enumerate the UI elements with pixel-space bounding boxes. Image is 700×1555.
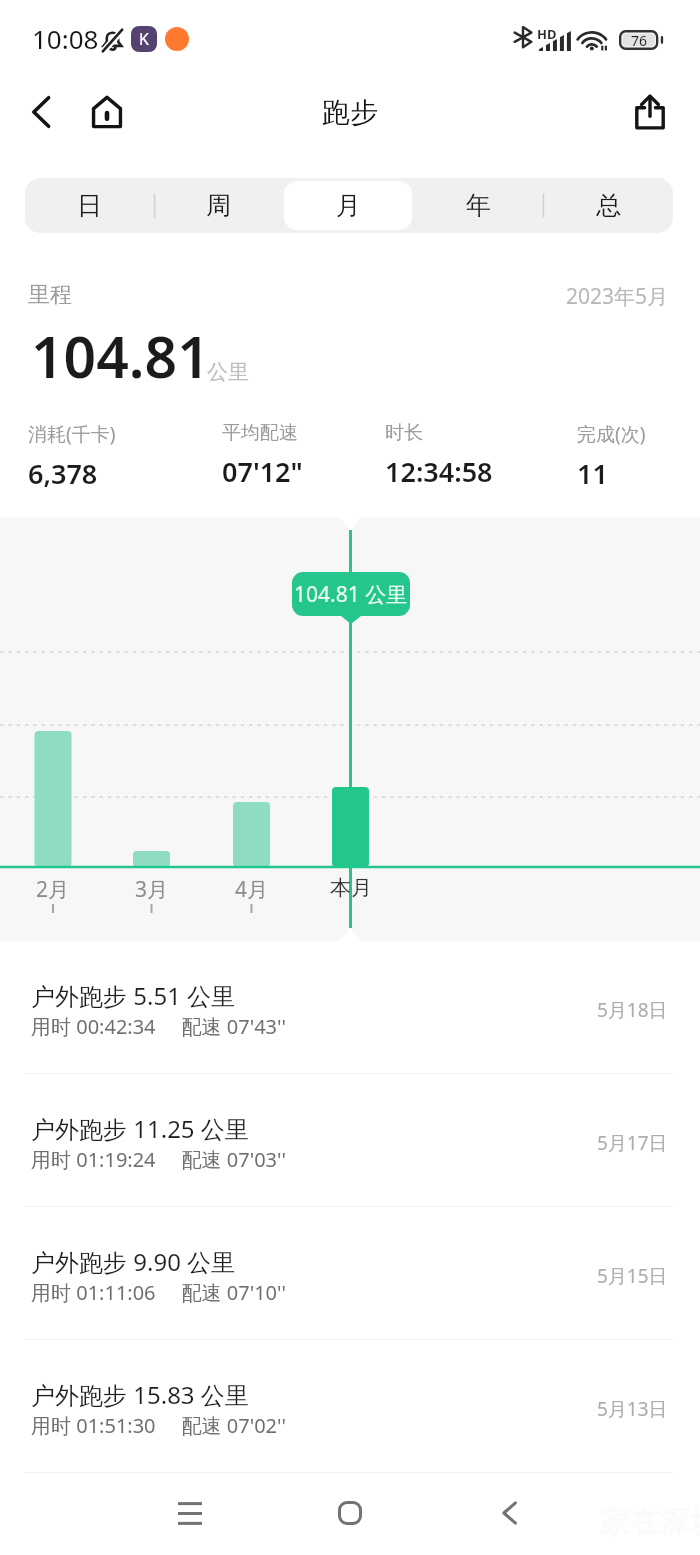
staticText: HD [537,25,557,43]
staticText: 户外跑步 15.83 公里 [31,1378,249,1411]
staticText: 6,378 [28,455,98,492]
staticText: 户外跑步 11.25 公里 [31,1112,249,1145]
staticText: 5月15日 [597,1263,668,1289]
staticText: 周 [206,190,231,221]
button[interactable]: Home [83,88,131,136]
staticText: 用时 01:19:24 配速 07'03'' [31,1146,287,1173]
button[interactable]: Share [626,88,674,136]
staticText: 月 [336,190,361,221]
button[interactable]: 户外跑步 9.90 公里 [0,1207,700,1340]
staticText: 公里 [207,359,249,385]
button[interactable]: 总 [544,181,672,230]
staticText: 11 [577,455,608,492]
staticText: 本月 [330,875,372,901]
staticText: 跑步 [322,95,378,130]
staticText: 平均配速 [222,421,298,445]
staticText: 5月18日 [597,997,668,1023]
staticText: 里程 [28,281,72,309]
staticText: 户外跑步 9.90 公里 [31,1245,236,1278]
staticText: 用时 01:51:30 配速 07'02'' [31,1412,287,1439]
button[interactable]: 月 [284,181,412,230]
staticText: 5月17日 [597,1130,668,1156]
staticText: 用时 01:11:06 配速 07'10'' [31,1279,287,1306]
staticText: 3月 [135,875,169,904]
staticText: K [139,28,149,50]
staticText: 104.81 [31,317,210,395]
staticText: 5月13日 [597,1396,668,1422]
button[interactable]: Back [17,88,65,136]
button[interactable]: Recent apps [162,1485,218,1541]
staticText: 完成(次) [577,421,646,447]
staticText: 76 [631,31,648,50]
staticText: 消耗(千卡) [28,421,116,447]
button[interactable]: 户外跑步 15.83 公里 [0,1340,700,1473]
staticText: 07'12" [222,453,303,490]
button[interactable]: 户外跑步 11.25 公里 [0,1074,700,1207]
staticText: 时长 [385,421,423,445]
button[interactable]: 周 [155,181,282,230]
staticText: 4月 [235,875,269,904]
staticText: 户外跑步 5.51 公里 [31,979,236,1012]
staticText: 年 [466,190,491,221]
staticText: 104.81 公里 [294,580,408,609]
button[interactable]: Home [322,1485,378,1541]
button[interactable]: 户外跑步 5.51 公里 [0,941,700,1074]
button[interactable]: 年 [414,181,542,230]
staticText: 10:08 [32,21,99,56]
staticText: 用时 00:42:34 配速 07'43'' [31,1013,287,1040]
staticText: 2月 [36,875,70,904]
button[interactable]: 日 [26,181,153,230]
button[interactable]: Back [481,1485,537,1541]
staticText: 日 [77,190,102,221]
staticText: 12:34:58 [385,453,493,490]
staticText: 总 [596,190,621,221]
staticText: 2023年5月 [566,282,669,311]
